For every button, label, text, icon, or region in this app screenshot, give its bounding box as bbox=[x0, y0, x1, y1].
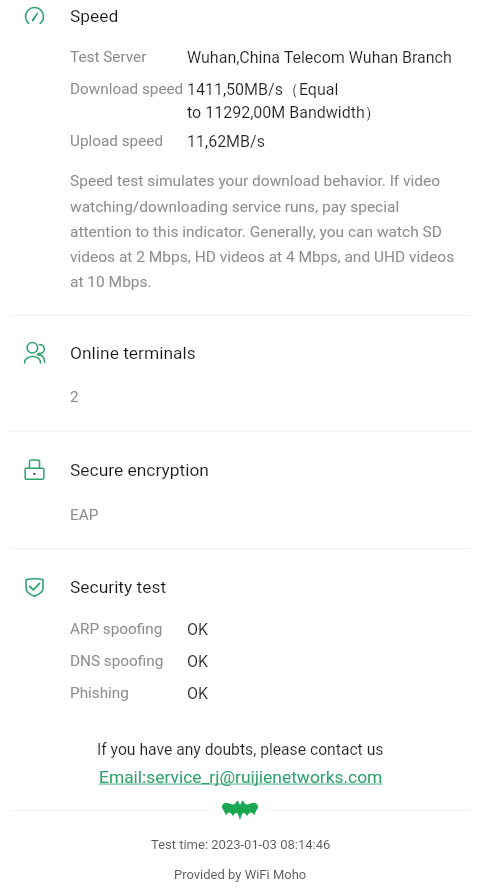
staticText: to 11292,00M Bandwidth） bbox=[187, 103, 381, 123]
staticText: Online terminals bbox=[70, 343, 196, 363]
button[interactable]: Security test bbox=[0, 549, 481, 714]
button[interactable]: Secure encryption bbox=[0, 432, 481, 548]
staticText: OK bbox=[187, 652, 209, 671]
staticText: Wuhan,China Telecom Wuhan Branch bbox=[187, 48, 452, 67]
staticText: If you have any doubts, please contact u… bbox=[97, 740, 384, 758]
other: Secure encryption bbox=[24, 459, 45, 480]
button[interactable]: Speed bbox=[0, 0, 481, 315]
staticText: Phishing bbox=[70, 684, 129, 702]
staticText: Email:service_rj@ruijienetworks.com bbox=[99, 767, 383, 787]
button[interactable]: Email:service_rj@ruijienetworks.com bbox=[95, 765, 387, 789]
staticText: Download speed bbox=[70, 80, 184, 98]
staticText: Secure encryption bbox=[70, 460, 209, 480]
staticText: 2 bbox=[70, 388, 79, 406]
staticText: Speed bbox=[70, 6, 119, 26]
staticText: OK bbox=[187, 620, 209, 639]
staticText: Upload speed bbox=[70, 132, 164, 150]
staticText: Test Server bbox=[70, 48, 147, 66]
staticText: 1411,50MB/s（Equal bbox=[187, 80, 339, 100]
staticText: Provided by WiFi Moho bbox=[174, 867, 307, 882]
staticText: ARP spoofing bbox=[70, 620, 163, 638]
other: Speed bbox=[24, 6, 45, 27]
other: Security test bbox=[24, 576, 45, 597]
other: Online terminals bbox=[24, 342, 45, 363]
staticText: DNS spoofing bbox=[70, 652, 164, 670]
staticText: Test time: 2023-01-03 08:14:46 bbox=[151, 837, 331, 852]
staticText: EAP bbox=[70, 506, 99, 524]
other: WiFi Moho logo bbox=[221, 800, 259, 820]
staticText: Speed test simulates your download behav… bbox=[70, 172, 460, 291]
staticText: Security test bbox=[70, 577, 167, 597]
staticText: 11,62MB/s bbox=[187, 132, 265, 151]
staticText: OK bbox=[187, 684, 209, 703]
button[interactable]: Online terminals bbox=[0, 316, 481, 431]
